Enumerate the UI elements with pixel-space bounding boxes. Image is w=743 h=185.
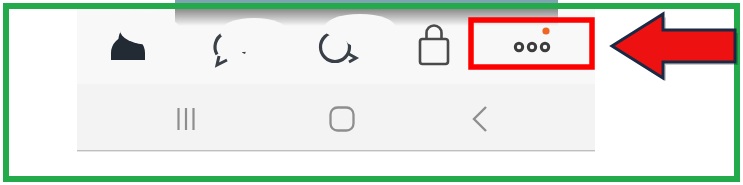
button[interactable]: Chat [186,14,274,80]
button[interactable]: Profile [91,14,165,80]
button[interactable]: More options [471,18,593,70]
button[interactable]: Home [296,88,388,150]
button[interactable]: Messages [289,14,385,80]
button[interactable]: Recent apps [140,88,232,150]
button[interactable]: Shop [399,14,469,80]
button[interactable]: Back [434,88,526,150]
